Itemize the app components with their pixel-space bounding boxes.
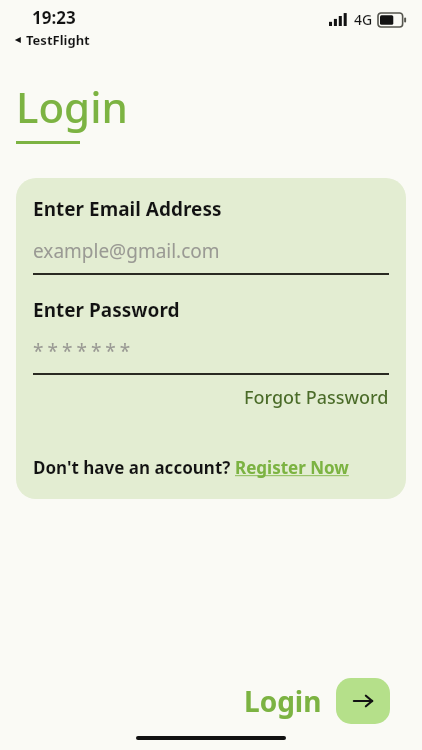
staticText: Login [16,78,128,135]
staticText: Register Now [235,456,349,479]
staticText: 19:23 [32,6,76,29]
button[interactable]: Login [244,682,322,720]
staticText: 4G [354,10,373,29]
button[interactable]: Register Now [235,456,349,479]
staticText: ******* [33,338,135,364]
staticText: TestFlight [26,31,90,49]
staticText: example@gmail.com [33,238,220,264]
staticText: Enter Email Address [33,196,222,222]
staticText: Don't have an account? [33,456,235,479]
staticText: Login [244,682,322,720]
staticText: Enter Password [33,297,180,323]
button[interactable]: Forgot Password [244,381,389,414]
button[interactable]: Submit login [336,678,390,724]
staticText: Forgot Password [244,385,389,410]
